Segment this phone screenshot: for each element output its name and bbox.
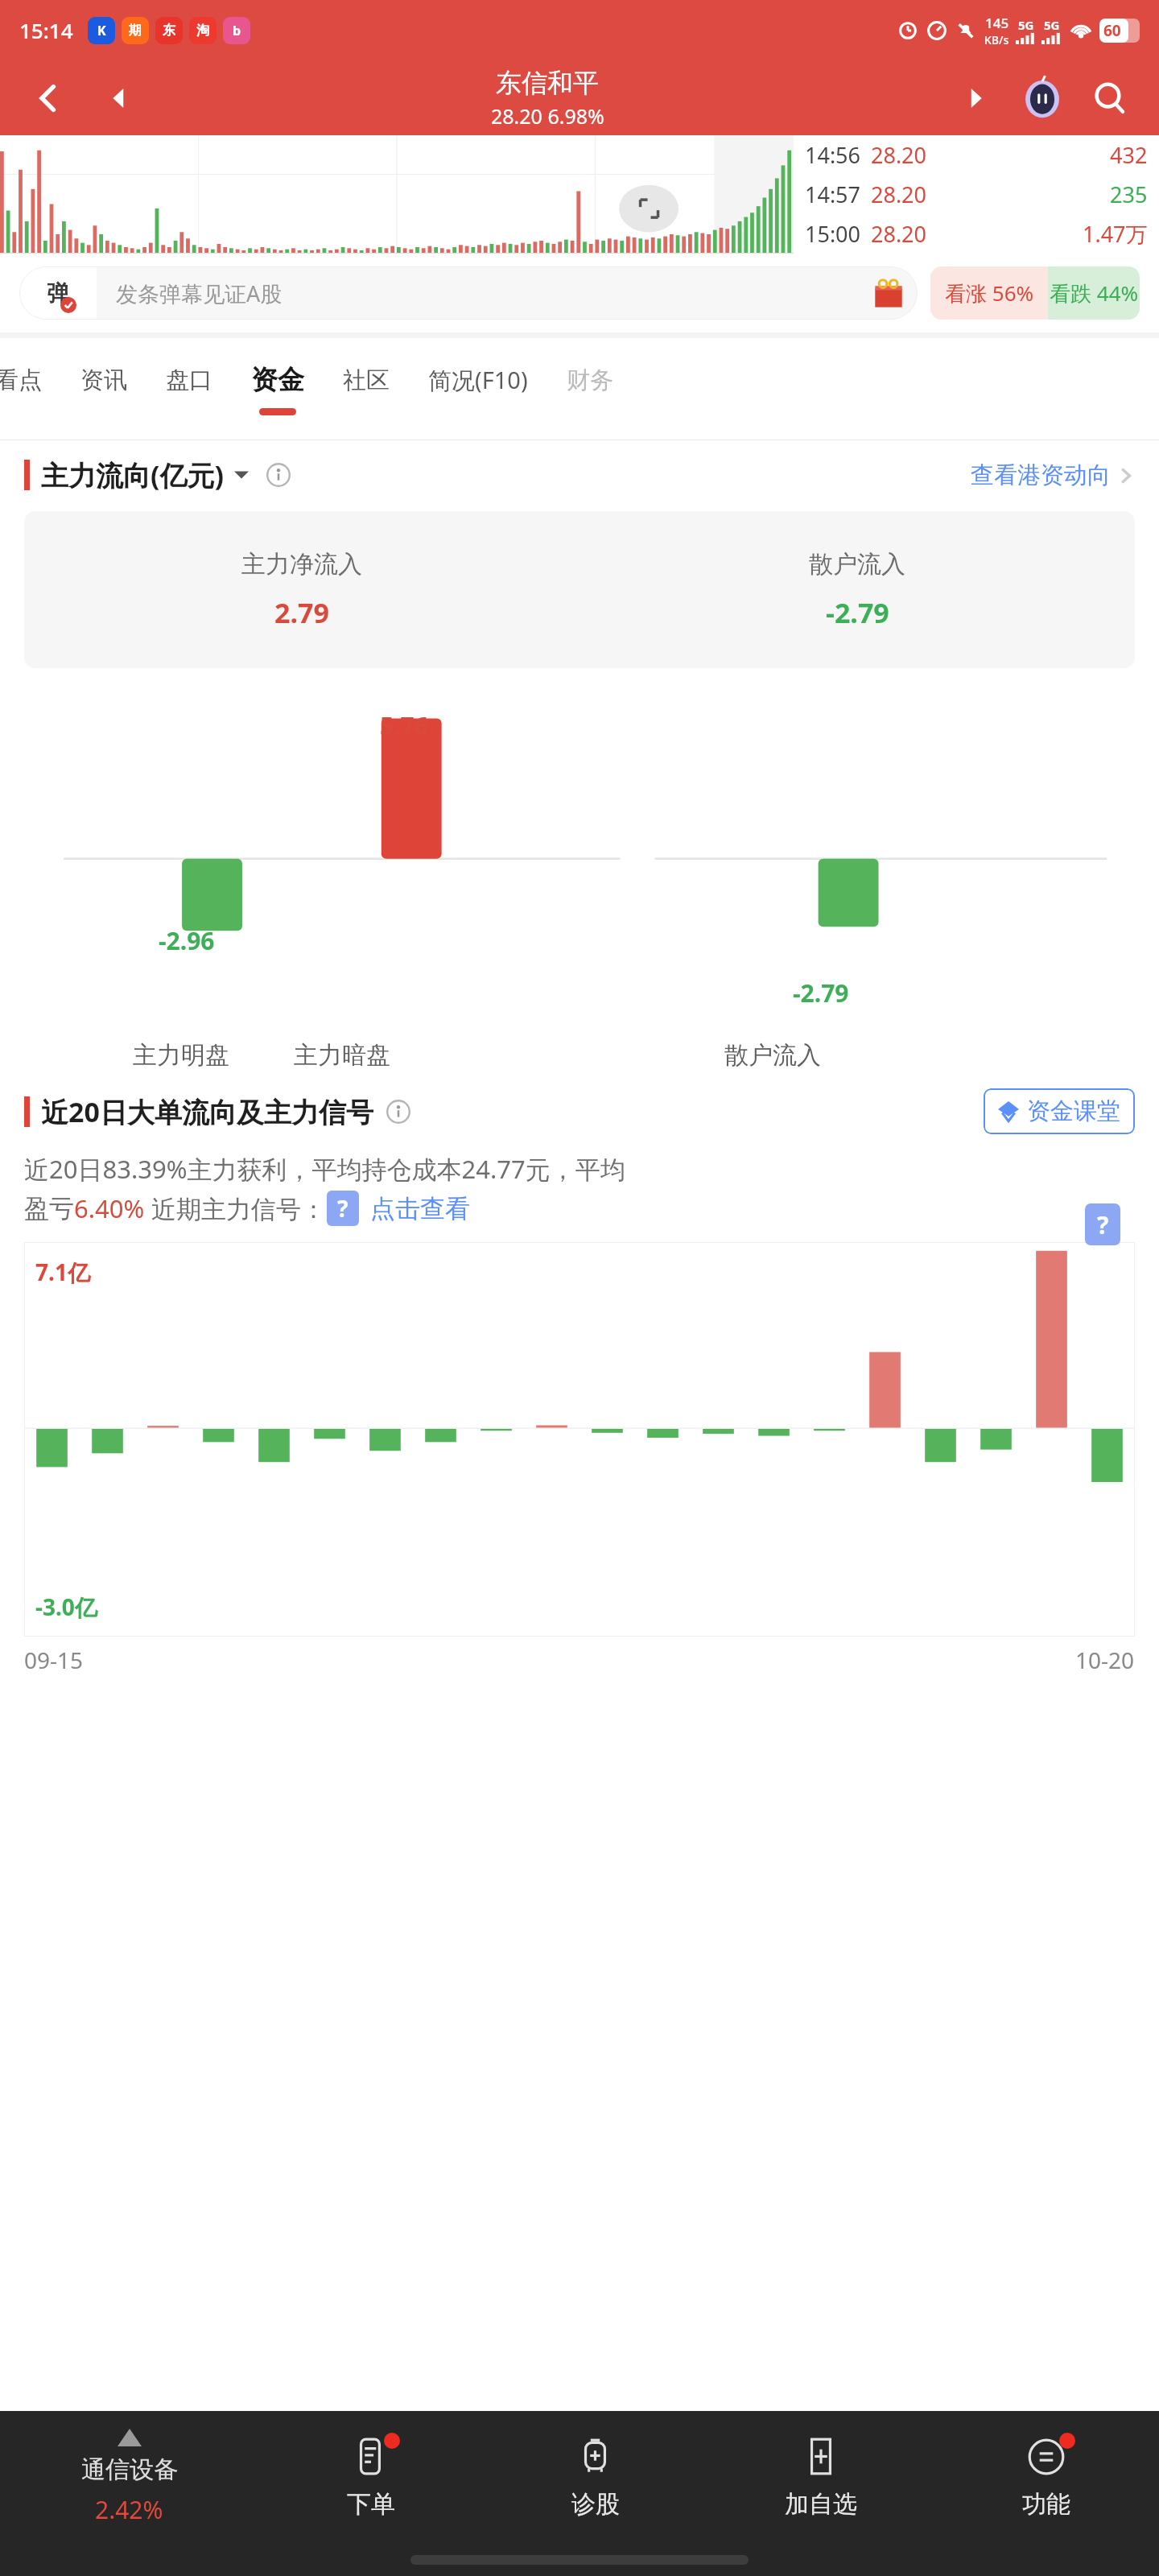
staticText: 145 (985, 14, 1009, 32)
button[interactable]: 资金课堂 (998, 1096, 1120, 1126)
button[interactable]: AI assistant (1016, 72, 1069, 125)
staticText: 淘 (196, 23, 209, 39)
button[interactable]: Next stock (956, 79, 995, 118)
staticText: 235 (1110, 180, 1148, 209)
staticText: -2.79 (826, 594, 889, 631)
staticText: 09-15 (24, 1645, 84, 1675)
staticText: 1.47万 (1083, 219, 1148, 249)
staticText: 财务 (567, 365, 613, 395)
staticText: 主力流向(亿元) (41, 456, 225, 493)
button[interactable]: 盘口 (166, 338, 212, 440)
staticText: 15:00 (805, 219, 861, 249)
button[interactable]: 资金 (251, 338, 304, 440)
button[interactable]: 看涨 56% (930, 266, 1140, 320)
staticText: 2.79 (274, 594, 329, 631)
staticText: 诊股 (571, 2489, 620, 2520)
button[interactable]: Back (24, 74, 72, 122)
button[interactable]: 通信设备 (0, 2429, 258, 2526)
staticText: -3.0亿 (35, 1591, 97, 1622)
staticText: 东信和平 (496, 67, 599, 99)
button[interactable]: 查看港资动向 (971, 460, 1135, 490)
button[interactable]: 财务 (567, 338, 613, 440)
staticText: 28.20 (871, 180, 1110, 209)
staticText: 查看港资动向 (971, 460, 1111, 490)
button[interactable]: 加自选 (708, 2411, 934, 2544)
button[interactable]: 社区 (343, 338, 390, 440)
staticText: 盈亏 (24, 1193, 74, 1224)
button[interactable]: ? (327, 1191, 359, 1226)
staticText: 60 (1103, 20, 1121, 41)
staticText: 散户流入 (809, 549, 905, 580)
staticText: -2.79 (793, 976, 849, 1009)
staticText: 看跌 44% (1050, 279, 1139, 308)
staticText: 15:14 (19, 16, 73, 44)
button[interactable]: 弹 (19, 266, 918, 320)
staticText: 期 (129, 23, 142, 39)
staticText: 看点 (0, 365, 42, 395)
staticText: 5G (1018, 17, 1034, 33)
staticText: 加自选 (785, 2489, 857, 2520)
staticText: 5.76 (380, 709, 428, 742)
staticText: 资金 (251, 363, 304, 397)
staticText: ? (1097, 1208, 1109, 1241)
staticText: 通信设备 (81, 2454, 178, 2485)
button[interactable]: 简况(F10) (428, 338, 528, 440)
staticText: 7.1亿 (35, 1257, 90, 1287)
staticText: 近20日83.39%主力获利，平均持仓成本24.77元，平均 (24, 1152, 625, 1186)
staticText: 散户流入 (724, 1040, 821, 1071)
staticText: K (97, 22, 106, 39)
staticText: 社区 (343, 365, 390, 395)
button[interactable]: Signal info (1085, 1203, 1120, 1245)
staticText: 主力明盘 (133, 1040, 386, 1071)
staticText: 近20日大单流向及主力信号 (41, 1093, 373, 1130)
staticText: 6.40% (74, 1191, 145, 1225)
staticText: 28.20 (871, 140, 1110, 170)
staticText: 资讯 (80, 365, 127, 395)
staticText: 10-20 (1075, 1645, 1135, 1675)
staticText: -2.96 (159, 924, 215, 957)
staticText: 看涨 56% (945, 279, 1034, 308)
staticText: 下单 (347, 2489, 395, 2520)
button[interactable]: 主力流向(亿元) (24, 456, 1135, 493)
staticText: b (233, 22, 241, 39)
staticText: 东 (163, 23, 175, 39)
staticText: 弹 (47, 279, 69, 308)
button[interactable]: 看点 (0, 338, 42, 440)
staticText: 2.42% (95, 2493, 163, 2526)
button[interactable]: 下单 (258, 2411, 483, 2544)
button[interactable]: 功能 (934, 2411, 1159, 2544)
staticText: ? (337, 1193, 349, 1224)
staticText: 发条弹幕见证A股 (116, 279, 283, 308)
staticText: 功能 (1022, 2489, 1070, 2520)
staticText: 28.20 6.98% (491, 102, 604, 130)
staticText: 432 (1110, 140, 1148, 170)
button[interactable]: Previous stock (100, 79, 138, 118)
button[interactable]: 点击查看 (370, 1193, 470, 1224)
button[interactable]: 资讯 (80, 338, 127, 440)
staticText: 28.20 (871, 219, 1083, 249)
staticText: 14:56 (805, 140, 861, 170)
staticText: 5G (1044, 17, 1060, 33)
button[interactable]: Search (1085, 73, 1135, 123)
staticText: KB/s (984, 32, 1009, 47)
staticText: 主力净流入 (241, 549, 362, 580)
staticText: 14:57 (805, 180, 861, 209)
staticText: 主力暗盘 (294, 1040, 390, 1071)
staticText: 简况(F10) (428, 364, 528, 396)
button[interactable]: 诊股 (483, 2411, 708, 2544)
staticText: 资金课堂 (1027, 1096, 1120, 1126)
button[interactable]: 近20日大单流向及主力信号 (24, 1088, 1135, 1134)
staticText: 近期主力信号： (145, 1191, 327, 1225)
staticText: 盘口 (166, 365, 212, 395)
